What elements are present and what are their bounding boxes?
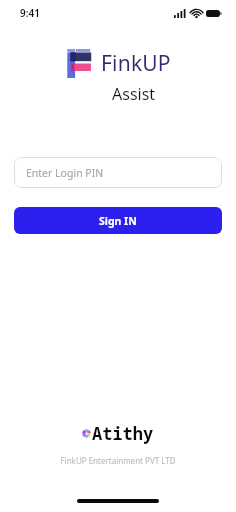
staticText: FinkUP	[101, 49, 171, 78]
button[interactable]: Sign IN	[14, 207, 222, 234]
staticText: Sign IN	[99, 214, 137, 228]
staticText: 9:41	[20, 6, 40, 20]
staticText: FinkUP Entertainment PVT LTD	[0, 455, 236, 466]
button[interactable]: Enter Login PIN	[14, 157, 222, 188]
staticText: Atithy	[92, 422, 154, 445]
staticText: Enter Login PIN	[26, 166, 104, 180]
staticText: Assist	[112, 83, 156, 105]
